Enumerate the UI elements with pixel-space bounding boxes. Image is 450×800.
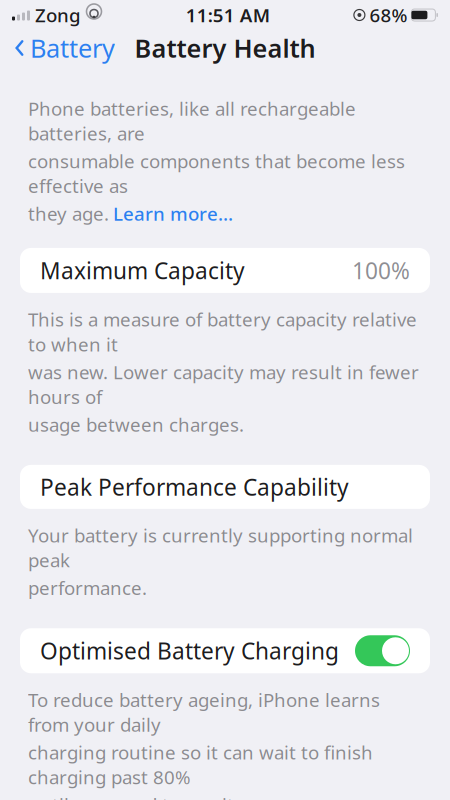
staticText: Battery Health [134,31,315,65]
staticText: Zong [35,3,81,27]
staticText: consumable components that become less e… [28,149,405,198]
button[interactable]: Optimised Battery Charging [20,628,430,673]
staticText: Peak Performance Capability [40,472,349,502]
staticText: Maximum Capacity [40,255,245,285]
button[interactable]: Maximum Capacity [20,248,430,293]
staticText: charging routine so it can wait to finis… [28,740,373,789]
staticText: Battery [30,31,115,65]
staticText: 68% [369,3,407,27]
staticText: Optimised Battery Charging [40,636,339,666]
staticText: This is a measure of battery capacity re… [28,307,417,357]
staticText: 11:51 AM [186,3,270,27]
staticText: Phone batteries, like all rechargeable b… [28,96,356,146]
staticText: performance. [28,575,147,600]
staticText: Learn more… [113,201,233,226]
staticText: they age. [28,201,109,226]
staticText: was new. Lower capacity may result in fe… [28,359,419,409]
button[interactable]: Peak Performance Capability [20,465,430,509]
staticText: 100% [352,255,410,285]
staticText: Your battery is currently supporting nor… [28,523,413,572]
button[interactable]: Battery [0,31,129,65]
staticText: To reduce battery ageing, iPhone learns … [28,687,380,737]
staticText: until you need to use it. [28,792,239,800]
staticText: usage between charges. [28,412,244,437]
button[interactable]: Learn more… [113,201,233,226]
